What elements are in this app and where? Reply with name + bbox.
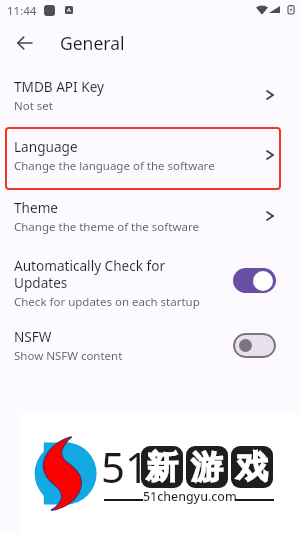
staticText: Automatically Check for Updates bbox=[14, 256, 182, 292]
staticText: Theme bbox=[14, 198, 59, 217]
staticText: A bbox=[67, 6, 71, 14]
staticText: Language bbox=[14, 137, 78, 156]
staticText: 11:44 bbox=[7, 3, 37, 19]
button[interactable]: Language bbox=[0, 128, 300, 187]
button[interactable]: NSFW bbox=[0, 318, 300, 377]
button[interactable]: Back bbox=[2, 21, 46, 65]
button[interactable]: Theme bbox=[0, 189, 300, 248]
staticText: 戏 bbox=[236, 447, 268, 487]
staticText: Show NSFW content bbox=[14, 348, 123, 364]
staticText: General bbox=[60, 31, 125, 55]
button[interactable]: Automatically Check for Updates bbox=[0, 247, 300, 322]
staticText: NSFW bbox=[14, 327, 182, 346]
staticText: Change the language of the software bbox=[14, 158, 215, 174]
staticText: Change the theme of the software bbox=[14, 219, 199, 235]
staticText: 新 bbox=[146, 447, 178, 487]
staticText: Check for updates on each startup bbox=[14, 294, 200, 310]
staticText: 游 bbox=[191, 447, 223, 487]
staticText: 51 bbox=[101, 438, 150, 495]
staticText: Not set bbox=[14, 98, 53, 114]
staticText: 51chengyu.com bbox=[143, 488, 237, 505]
staticText: TMDB API Key bbox=[14, 77, 104, 96]
button[interactable]: TMDB API Key bbox=[0, 68, 300, 127]
